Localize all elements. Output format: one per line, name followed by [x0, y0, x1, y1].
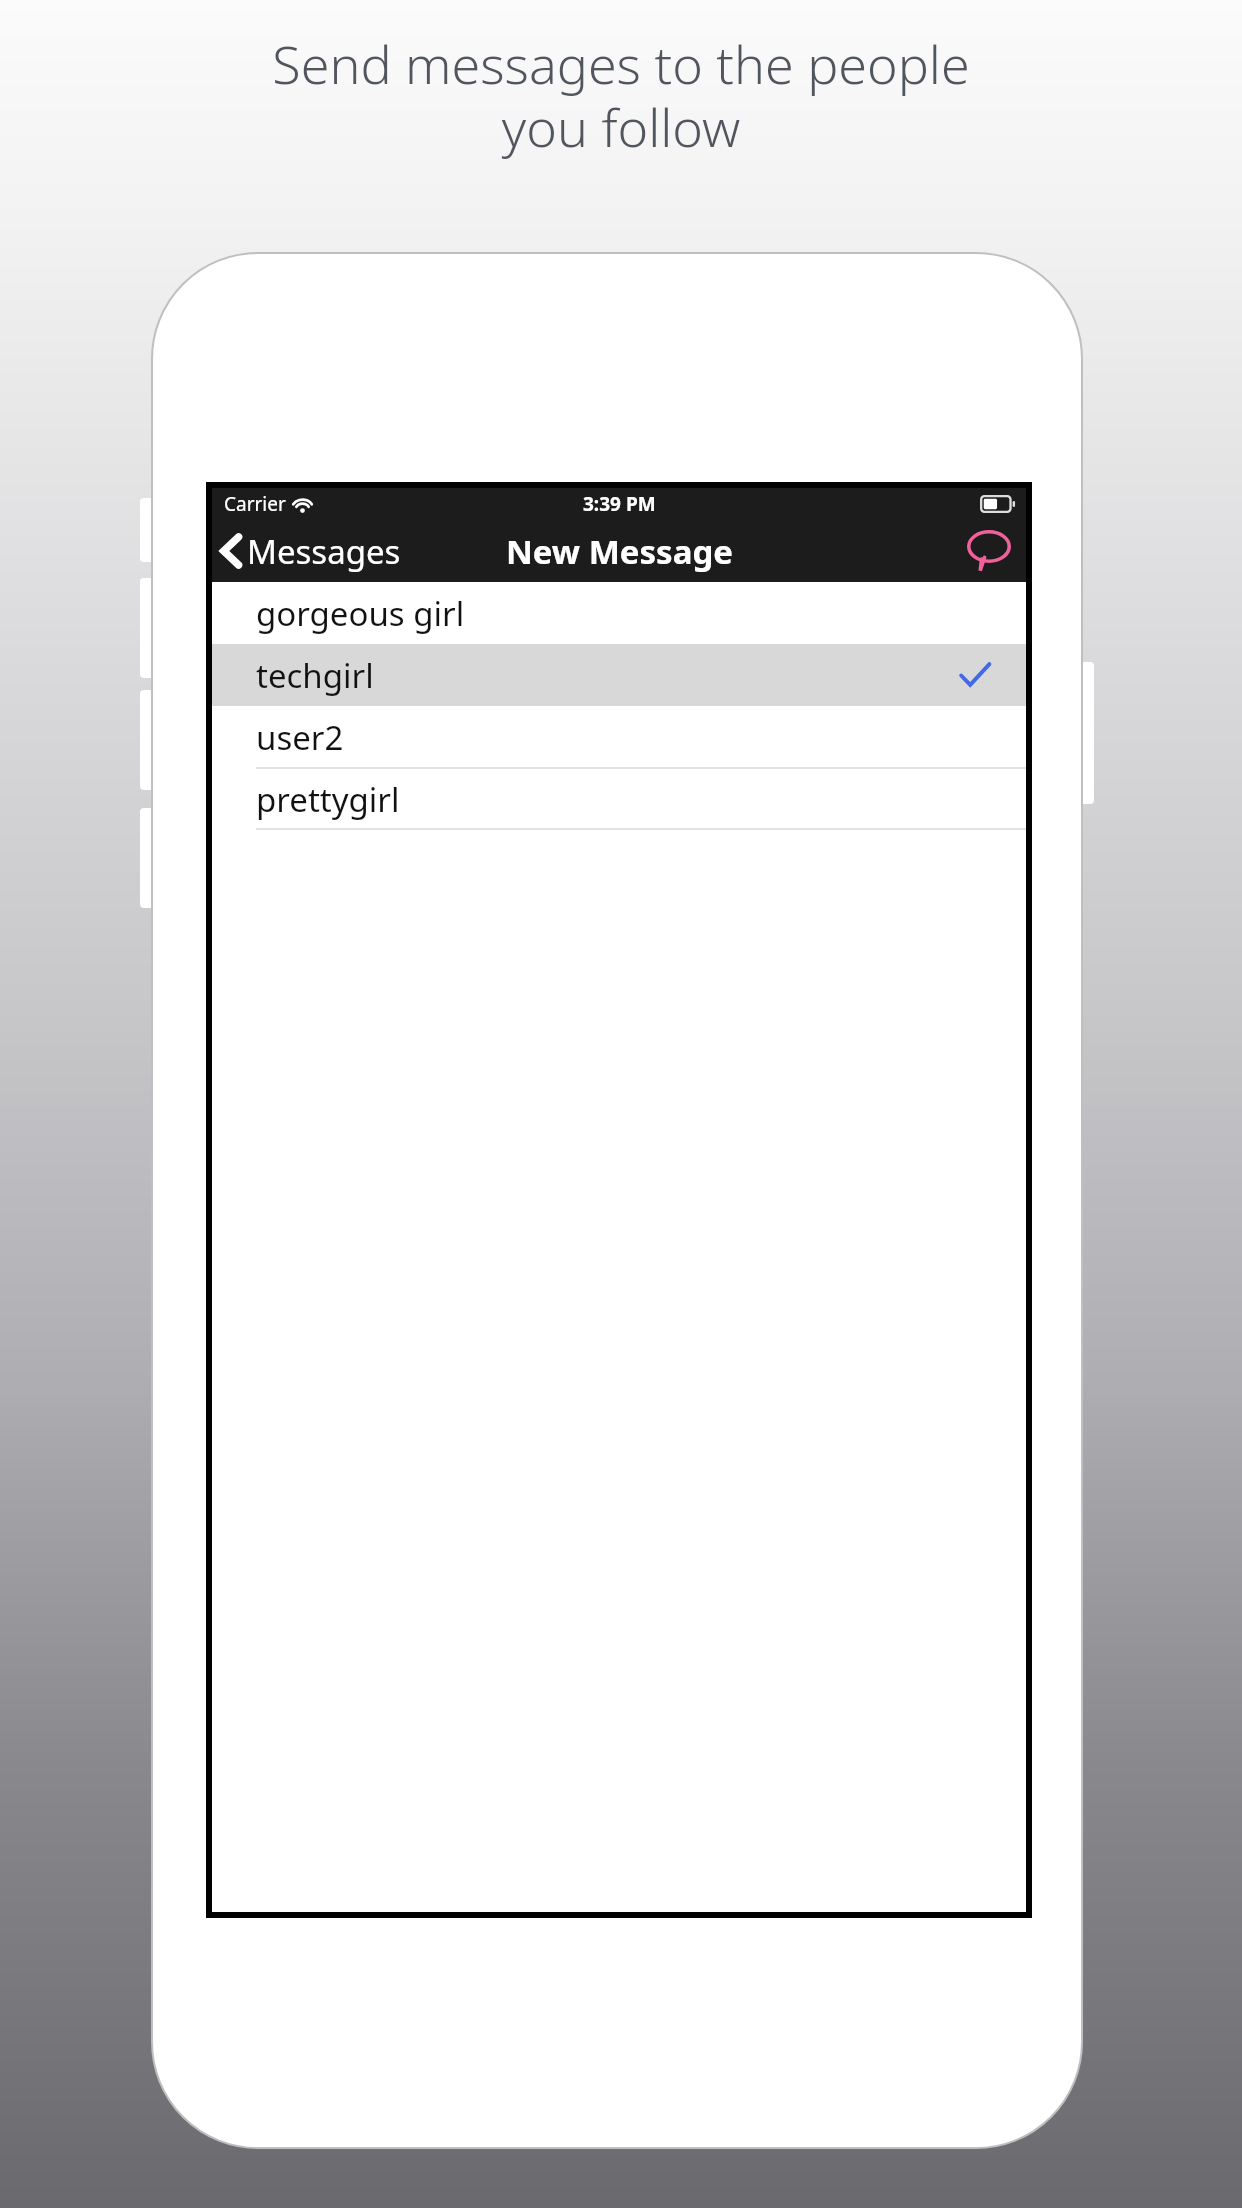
staticText: gorgeous girl [256, 591, 465, 636]
staticText: techgirl [256, 653, 374, 698]
staticText: user2 [256, 715, 344, 760]
staticText: 3:39 PM [583, 491, 656, 517]
button[interactable]: Messages [212, 520, 411, 582]
button[interactable]: gorgeous girl [212, 582, 1026, 644]
button[interactable]: prettygirl [212, 768, 1026, 830]
staticText: Send messages to the people you follow [120, 28, 1122, 162]
staticText: New Message [506, 529, 733, 574]
staticText: Carrier [224, 491, 286, 517]
button[interactable]: user2 [212, 706, 1026, 768]
staticText: Messages [247, 529, 401, 574]
button[interactable]: Compose message [952, 520, 1026, 582]
staticText: prettygirl [256, 777, 400, 822]
button[interactable]: techgirl [212, 644, 1026, 706]
